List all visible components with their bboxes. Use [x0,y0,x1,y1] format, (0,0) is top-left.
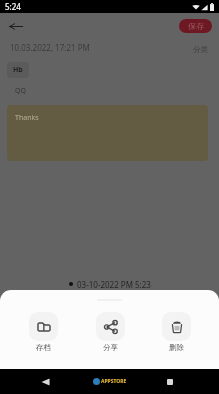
button[interactable]: 删除 [162,312,191,352]
staticText: 保存 [188,21,204,31]
button[interactable]: Back [5,15,27,37]
staticText: 5:24 [5,1,21,12]
button[interactable]: 保存 [179,19,212,33]
button[interactable]: Thanks [7,105,208,161]
button[interactable]: 分享 [96,312,125,352]
staticText: 删除 [169,343,184,352]
staticText: 存档 [36,343,51,352]
staticText: Hb [13,65,23,75]
staticText: QQ [15,86,26,96]
button[interactable]: 分类 [196,43,211,52]
button[interactable]: Recent apps [159,371,181,393]
staticText: 10.03.2022, 17:21 PM [10,42,90,53]
staticText: 03-10-2022 PM 5:23 [77,279,151,290]
button[interactable]: 存档 [29,312,58,352]
staticText: APPSTORE [101,378,127,385]
staticText: 分享 [103,343,118,352]
staticText: Thanks [15,113,39,123]
staticText: 分类 [193,45,208,54]
button[interactable]: Back [34,371,56,393]
